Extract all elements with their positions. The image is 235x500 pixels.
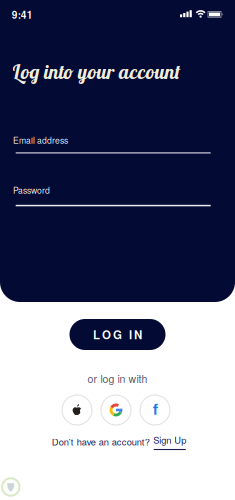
staticText: or log in with (87, 371, 147, 386)
button[interactable]: Email address (13, 134, 208, 154)
button[interactable]: Password (13, 184, 208, 206)
staticText: Log into your account (11, 59, 180, 84)
staticText: f (153, 401, 158, 418)
button[interactable]: Log in with Google (101, 395, 131, 425)
staticText: L O G I N (93, 326, 142, 343)
staticText: Password (13, 184, 50, 196)
staticText: Sign Up (153, 433, 186, 446)
staticText: Don't have an account? (52, 435, 150, 448)
button[interactable]: L O G I N (69, 319, 165, 350)
button[interactable]: Sign Up (153, 433, 186, 450)
button[interactable]: Log in with Facebook (140, 395, 170, 425)
staticText: 9:41 (12, 7, 33, 22)
button[interactable]: Log in with Apple (62, 395, 92, 425)
staticText: Email address (13, 134, 68, 146)
